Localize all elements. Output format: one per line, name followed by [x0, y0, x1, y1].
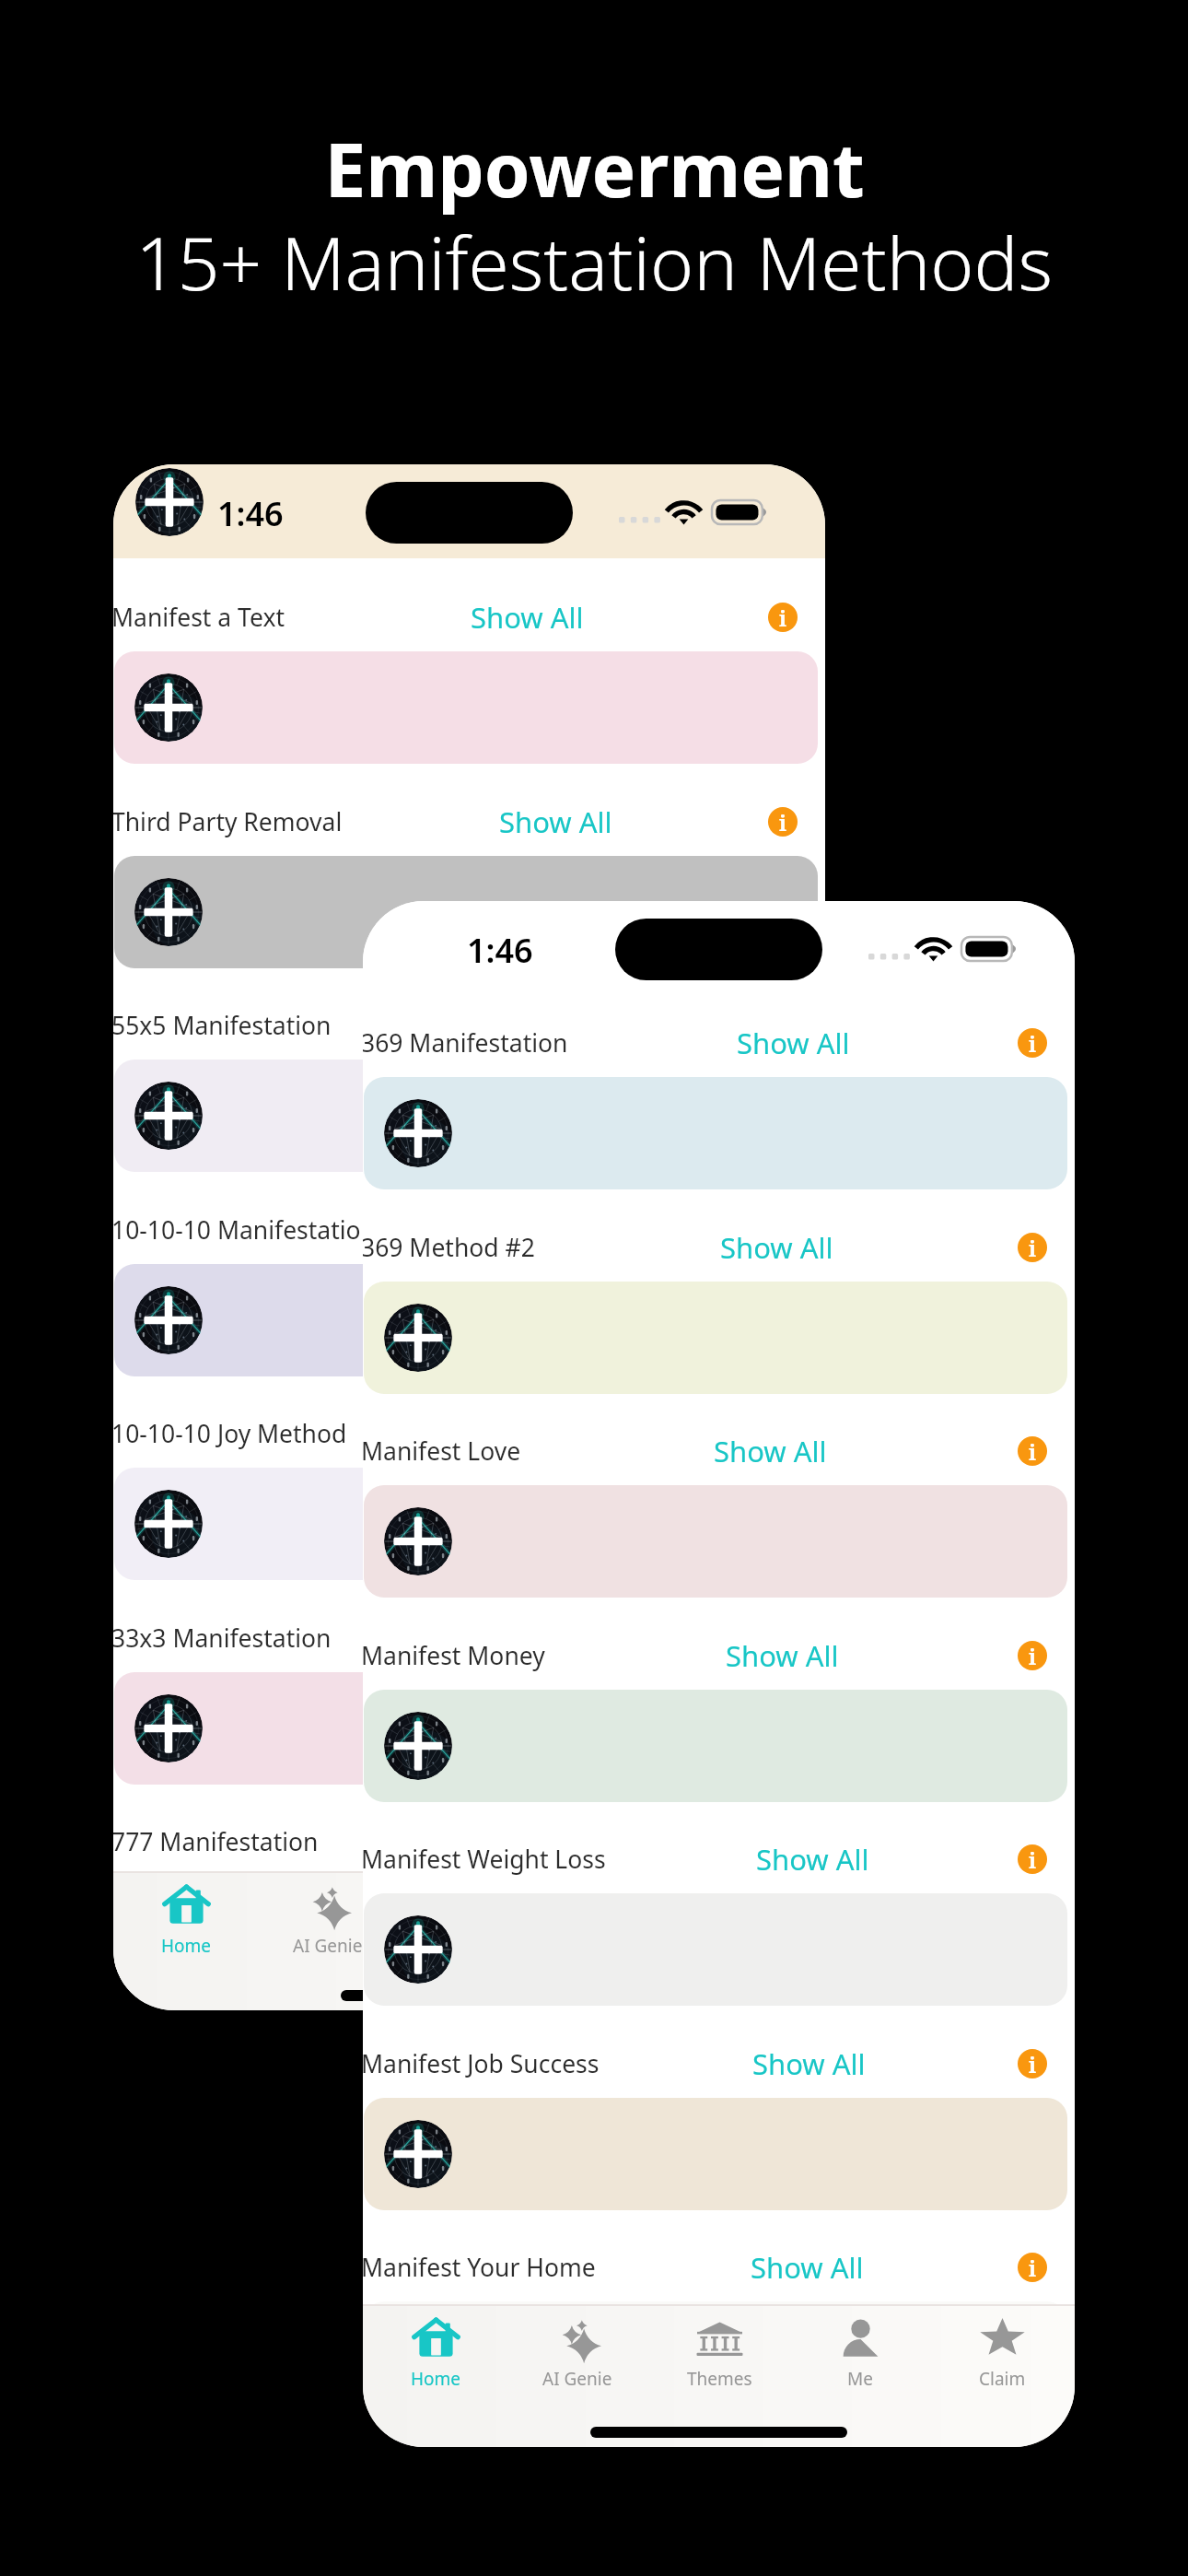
staticText: i: [779, 1012, 787, 1040]
staticText: AI Genie: [542, 2367, 612, 2391]
button[interactable]: Themes: [650, 2304, 788, 2447]
staticText: 1:46: [467, 928, 533, 973]
button[interactable]: Manifest Love: [363, 1429, 1075, 1473]
staticText: Me: [847, 2367, 873, 2391]
button[interactable]: Home: [117, 1871, 255, 2010]
button[interactable]: [364, 1690, 1067, 1802]
button[interactable]: Info: [768, 1827, 798, 1856]
button[interactable]: Info: [768, 1215, 798, 1245]
button[interactable]: Show All: [720, 1228, 833, 1267]
staticText: 10-10-10 Manifestation: [113, 1213, 377, 1247]
button[interactable]: Manifest Job Success: [363, 2042, 1075, 2086]
button[interactable]: Claim: [933, 2304, 1071, 2447]
button[interactable]: Show All: [471, 598, 584, 637]
button[interactable]: [364, 2098, 1067, 2210]
button[interactable]: [364, 1077, 1067, 1189]
button[interactable]: AI Genie: [259, 1871, 397, 2010]
staticText: Claim: [979, 2367, 1026, 2391]
button[interactable]: 55x5 Manifestation: [113, 1003, 825, 1048]
button[interactable]: Info: [768, 1623, 798, 1653]
button[interactable]: Third Party Removal: [113, 800, 825, 844]
button[interactable]: Info: [1018, 2049, 1047, 2078]
button[interactable]: Show All: [756, 1840, 869, 1879]
button[interactable]: Info: [1018, 2253, 1047, 2282]
button[interactable]: [364, 1282, 1067, 1394]
button[interactable]: Info: [1018, 1028, 1047, 1058]
staticText: i: [779, 1624, 787, 1653]
button[interactable]: [114, 651, 818, 764]
button[interactable]: [114, 1264, 818, 1376]
button[interactable]: Info: [1018, 1436, 1047, 1466]
staticText: Manifest a Text: [113, 601, 285, 634]
staticText: AI Genie: [293, 1934, 363, 1958]
button[interactable]: 369 Manifestation: [363, 1021, 1075, 1065]
button[interactable]: Manifest a Text: [113, 595, 825, 639]
button[interactable]: Info: [768, 603, 798, 632]
staticText: Show All: [471, 598, 584, 637]
button[interactable]: [114, 1468, 818, 1580]
button[interactable]: [364, 1893, 1067, 2006]
staticText: 33x3 Manifestation: [113, 1622, 332, 1655]
staticText: Show All: [737, 1024, 850, 1062]
button[interactable]: [364, 1485, 1067, 1598]
button[interactable]: Manifest Weight Loss: [363, 1837, 1075, 1881]
button[interactable]: Show All: [714, 1432, 827, 1470]
staticText: Home: [411, 2367, 461, 2391]
button[interactable]: Show All: [494, 1619, 607, 1657]
button[interactable]: Info: [1018, 1844, 1047, 1874]
button[interactable]: Show All: [502, 1414, 615, 1453]
staticText: Show All: [752, 2044, 866, 2083]
staticText: 55x5 Manifestation: [113, 1009, 332, 1042]
button[interactable]: Show All: [517, 1211, 630, 1249]
staticText: Manifest Money: [363, 1639, 545, 1672]
staticText: Show All: [494, 1619, 607, 1657]
button[interactable]: 33x3 Manifestation: [113, 1616, 825, 1660]
staticText: Manifest Job Success: [363, 2047, 600, 2080]
button[interactable]: [114, 1060, 818, 1172]
button[interactable]: [114, 856, 818, 968]
button[interactable]: Show All: [499, 802, 612, 841]
staticText: Empowerment: [324, 118, 865, 218]
button[interactable]: Info: [1018, 1641, 1047, 1670]
button[interactable]: Info: [768, 1011, 798, 1040]
button[interactable]: 369 Method #2: [363, 1225, 1075, 1270]
button[interactable]: 777 Manifestation: [113, 1820, 825, 1864]
staticText: Third Party Removal: [113, 805, 343, 838]
button[interactable]: Home: [367, 2304, 505, 2447]
button[interactable]: Info: [1018, 1233, 1047, 1262]
button[interactable]: Manifest Your Home: [363, 2245, 1075, 2289]
button[interactable]: AI Genie: [508, 2304, 646, 2447]
button[interactable]: Show All: [726, 1636, 839, 1675]
button[interactable]: [114, 1672, 818, 1785]
button[interactable]: 10-10-10 Joy Method: [113, 1411, 825, 1456]
staticText: i: [1029, 1642, 1037, 1670]
staticText: Show All: [720, 1228, 833, 1267]
staticText: Show All: [751, 2248, 864, 2287]
button[interactable]: Info: [768, 807, 798, 837]
staticText: Manifest Weight Loss: [363, 1843, 606, 1876]
button[interactable]: Show All: [487, 1822, 600, 1861]
staticText: i: [779, 1216, 787, 1245]
button[interactable]: Show All: [751, 2248, 864, 2287]
staticText: Themes: [437, 1934, 503, 1958]
button[interactable]: Claim: [683, 1871, 821, 2010]
button[interactable]: [364, 2301, 1067, 2414]
staticText: i: [1029, 1029, 1037, 1058]
button[interactable]: [114, 1876, 818, 1988]
button[interactable]: Show All: [494, 1006, 607, 1045]
staticText: i: [779, 1828, 787, 1856]
button[interactable]: Info: [768, 1419, 798, 1448]
staticText: i: [1029, 1437, 1037, 1466]
button[interactable]: Show All: [752, 2044, 866, 2083]
staticText: i: [779, 1420, 787, 1448]
staticText: Themes: [687, 2367, 752, 2391]
button[interactable]: Show All: [737, 1024, 850, 1062]
staticText: 10-10-10 Joy Method: [113, 1417, 347, 1450]
button[interactable]: Me: [542, 1871, 680, 2010]
staticText: Show All: [726, 1636, 839, 1675]
button[interactable]: Themes: [401, 1871, 539, 2010]
button[interactable]: Me: [791, 2304, 929, 2447]
button[interactable]: Manifest Money: [363, 1633, 1075, 1678]
button[interactable]: 10-10-10 Manifestation: [113, 1208, 825, 1252]
